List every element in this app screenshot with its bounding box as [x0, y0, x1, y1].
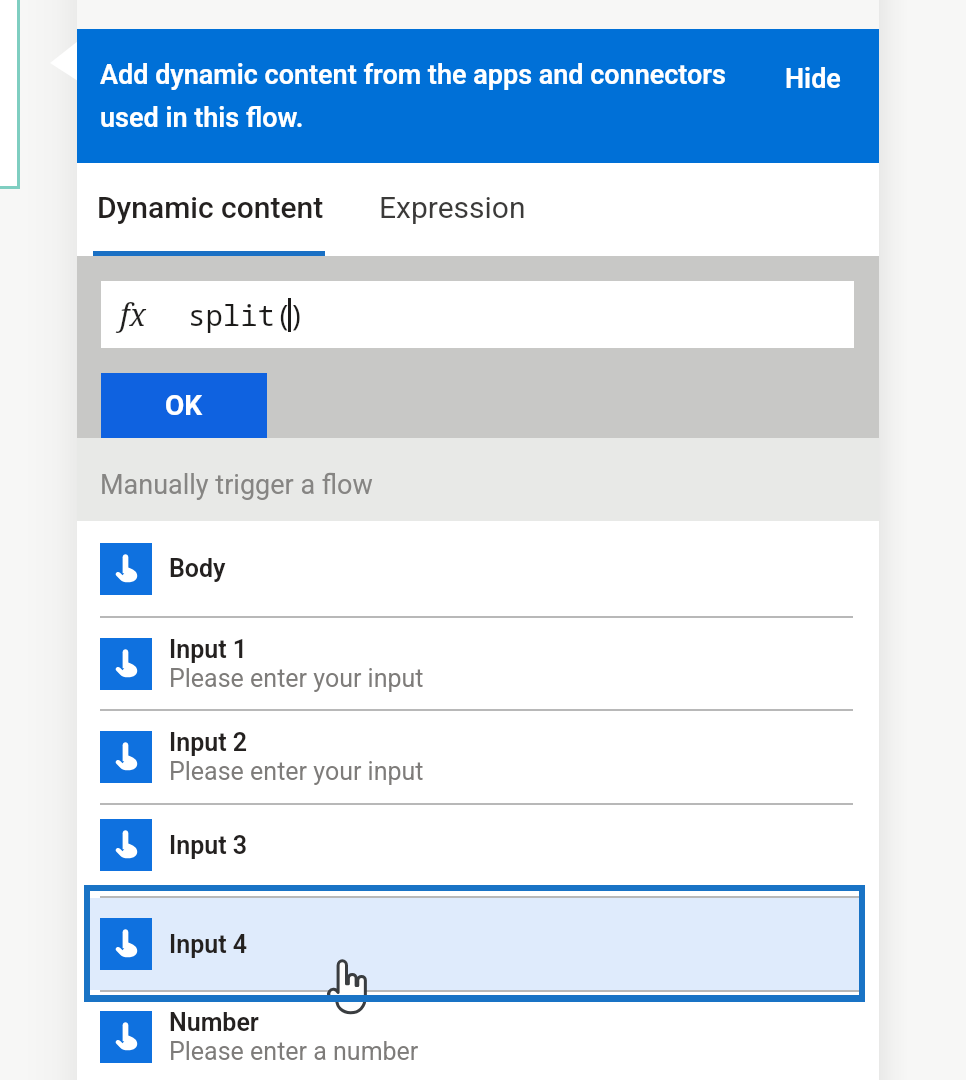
- staticText: Input 2: [169, 728, 248, 757]
- staticText: Add dynamic content from the apps and co…: [100, 59, 755, 134]
- staticText: split(: [188, 295, 293, 334]
- button[interactable]: Number: [77, 1002, 879, 1072]
- button[interactable]: OK: [101, 373, 267, 438]
- button[interactable]: Expression: [372, 163, 533, 251]
- button[interactable]: Hide: [781, 59, 845, 99]
- button[interactable]: Input 4: [90, 891, 859, 996]
- staticText: Manually trigger a flow: [100, 469, 373, 501]
- staticText: Hide: [785, 63, 841, 95]
- button[interactable]: Body: [77, 521, 879, 616]
- staticText: Please enter your input: [169, 757, 424, 786]
- button[interactable]: Dynamic content: [90, 163, 331, 251]
- staticText: Input 1: [169, 635, 248, 664]
- staticText: OK: [165, 389, 203, 422]
- button[interactable]: Input 2: [77, 711, 879, 803]
- staticText: Number: [169, 1008, 259, 1037]
- button[interactable]: Expression editor: [101, 281, 854, 348]
- button[interactable]: Input 1: [77, 618, 879, 709]
- staticText: Please enter your input: [169, 664, 424, 693]
- staticText: Please enter a number: [169, 1037, 419, 1066]
- staticText: fx: [120, 294, 146, 335]
- staticText: ): [288, 295, 306, 334]
- button[interactable]: Input 3: [77, 805, 879, 885]
- staticText: Input 4: [169, 930, 248, 959]
- staticText: Dynamic content: [97, 190, 324, 225]
- staticText: Input 3: [169, 831, 248, 860]
- staticText: Body: [169, 554, 226, 583]
- staticText: Expression: [379, 190, 526, 225]
